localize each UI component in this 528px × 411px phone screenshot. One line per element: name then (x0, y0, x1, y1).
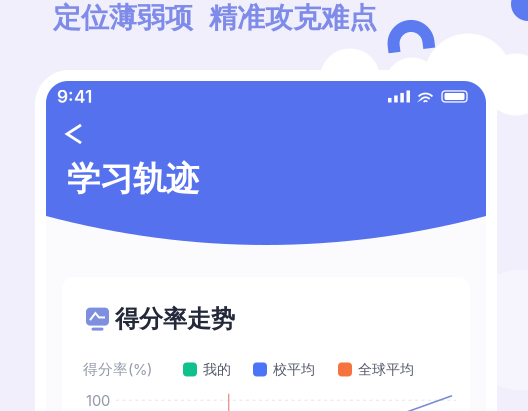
staticText: 全球平均 (358, 361, 414, 378)
staticText: 学习轨迹 (67, 158, 199, 200)
staticText: 定位薄弱项 精准攻克难点 (53, 0, 377, 36)
staticText: 9:41 (57, 86, 92, 107)
button[interactable]: Back (46, 119, 95, 149)
staticText: 我的 (203, 361, 231, 378)
staticText: 100 (86, 392, 110, 409)
staticText: 得分率走势 (115, 304, 235, 334)
staticText: 得分率(%) (83, 360, 152, 379)
staticText: 校平均 (273, 361, 315, 378)
